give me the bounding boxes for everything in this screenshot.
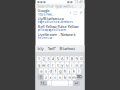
staticText: https://www.google.com (37, 13, 53, 16)
staticText: ?123 (40, 80, 47, 86)
staticText: e (47, 62, 49, 67)
staticText: ▪▪ 12:45 (67, 0, 83, 4)
staticText: 3 (47, 56, 49, 61)
staticText: “bell” (47, 46, 55, 51)
button[interactable]: 1 (37, 56, 41, 61)
staticText: x (50, 74, 52, 80)
button[interactable]: j (67, 68, 71, 74)
staticText: h (64, 68, 66, 74)
staticText: 9 (75, 56, 77, 61)
staticText: ↵ (75, 81, 78, 85)
button[interactable]: o (74, 62, 78, 68)
button[interactable]: ⇧ (38, 74, 43, 80)
button[interactable]: 2 (41, 56, 46, 61)
button[interactable]: f (53, 68, 57, 74)
staticText: yellowpagebills.com (37, 28, 65, 32)
staticText: d (50, 68, 52, 74)
staticText: t.ly/Bluehost-cp (37, 16, 63, 21)
staticText: s (45, 68, 47, 74)
button[interactable]: h (63, 68, 67, 74)
button[interactable]: w (41, 62, 46, 68)
staticText: r (52, 62, 54, 67)
button[interactable]: t (56, 62, 60, 68)
button[interactable]: 0 (79, 56, 83, 61)
button[interactable]: 4 (51, 56, 55, 61)
button[interactable]: ?123 (40, 80, 47, 86)
button[interactable]: u (65, 62, 69, 68)
button[interactable]: Share (69, 9, 71, 16)
staticText: . (70, 80, 71, 86)
button[interactable]: ↵ (73, 80, 80, 86)
button[interactable]: r (51, 62, 55, 68)
staticText: n (68, 74, 70, 80)
staticText: Google (37, 8, 49, 13)
staticText: q (38, 62, 40, 67)
button[interactable]: i (70, 62, 74, 68)
button[interactable]: l (77, 68, 81, 74)
button[interactable]: y (60, 62, 64, 68)
button[interactable]: ⌦ (77, 74, 82, 80)
button[interactable]: 7 (65, 56, 69, 61)
button[interactable]: v (58, 74, 62, 80)
button[interactable]: 6 (60, 56, 64, 61)
staticText: 0 (80, 56, 82, 61)
button[interactable]: n (67, 74, 71, 80)
staticText: , (49, 80, 50, 86)
button[interactable]: s (44, 68, 48, 74)
staticText: □ (73, 10, 77, 15)
button[interactable]: . (69, 80, 73, 86)
button[interactable] (52, 80, 68, 86)
staticText: g (59, 68, 61, 74)
staticText: k (73, 68, 75, 74)
button[interactable]: p (79, 62, 83, 68)
button[interactable]: b (63, 74, 67, 80)
staticText: z (45, 74, 47, 80)
button[interactable]: 5 (56, 56, 60, 61)
staticText: l (78, 68, 79, 74)
button[interactable]: Copy (73, 10, 77, 15)
button[interactable]: t.ly/Bluehost-cp (37, 16, 82, 24)
button[interactable]: d (48, 68, 53, 74)
staticText: 5 (57, 56, 59, 61)
button[interactable]: z (44, 74, 48, 80)
button[interactable]: 8 (70, 56, 74, 61)
button[interactable]: LiveStream - Network (37, 32, 82, 40)
staticText: j (69, 68, 70, 74)
staticText: c (54, 74, 56, 80)
staticText: ⋮ (79, 4, 83, 8)
button[interactable]: x (48, 74, 53, 80)
staticText: belinet.ca (37, 36, 51, 40)
button[interactable]: e (46, 62, 50, 68)
staticText: m (72, 74, 76, 80)
button[interactable]: 9 (74, 56, 78, 61)
staticText: a (40, 68, 42, 74)
button[interactable]: , (47, 80, 51, 86)
button[interactable]: Bell Yellow Pulse Yellow (37, 24, 82, 32)
staticText: 6 (61, 56, 63, 61)
button[interactable]: c (53, 74, 57, 80)
staticText: ⌦ (77, 74, 82, 80)
staticText: 8 (71, 56, 73, 61)
staticText: 4 (52, 56, 54, 61)
button[interactable]: Edit (79, 10, 82, 15)
button[interactable]: m (72, 74, 76, 80)
button[interactable]: q (37, 62, 41, 68)
staticText: Bluehost (59, 46, 74, 51)
button[interactable]: g (58, 68, 62, 74)
staticText: ▪▪▪ (37, 0, 46, 4)
button[interactable]: a (39, 68, 43, 74)
staticText: ‹ (69, 9, 71, 16)
staticText: ⇧ (39, 75, 42, 79)
staticText: i (71, 62, 72, 67)
staticText: LiveStream - Network (37, 32, 75, 37)
staticText: pages.bluehost.com/conv (37, 20, 72, 24)
staticText: 7 (66, 56, 68, 61)
staticText: b (64, 74, 66, 80)
staticText: p (80, 62, 82, 67)
staticText: u (66, 62, 68, 67)
button[interactable]: 3 (46, 56, 50, 61)
staticText: 2 (42, 56, 44, 61)
button[interactable]: Search or type web address (35, 3, 84, 8)
button[interactable]: k (72, 68, 76, 74)
staticText: w (42, 62, 45, 67)
